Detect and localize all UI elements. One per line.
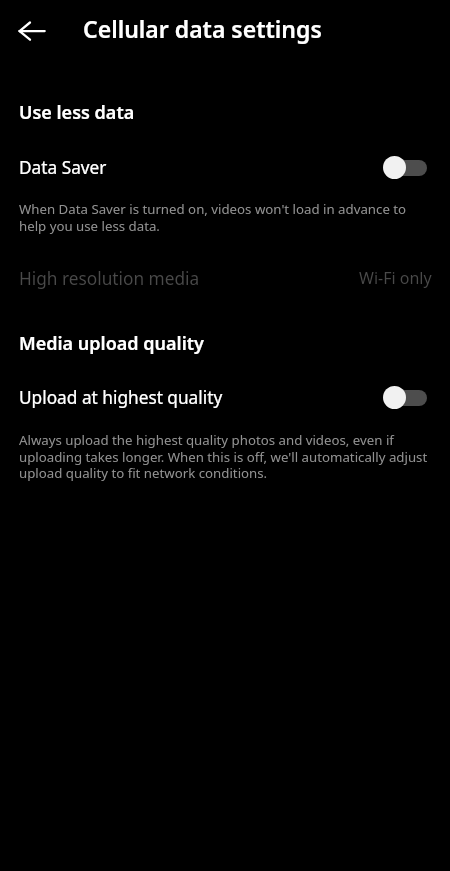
staticText: Media upload quality <box>19 331 204 356</box>
staticText: High resolution media <box>19 267 359 290</box>
button[interactable]: Upload at highest quality <box>0 373 450 421</box>
button[interactable]: High resolution media <box>0 261 450 295</box>
button[interactable]: Data Saver <box>0 143 450 191</box>
staticText: Always upload the highest quality photos… <box>19 431 429 482</box>
button[interactable]: Back <box>8 7 56 55</box>
staticText: Use less data <box>19 100 135 125</box>
staticText: Wi-Fi only <box>359 267 432 289</box>
staticText: Upload at highest quality <box>19 386 382 409</box>
staticText: When Data Saver is turned on, videos won… <box>19 200 429 235</box>
staticText: Data Saver <box>19 156 382 179</box>
staticText: Cellular data settings <box>83 13 322 44</box>
